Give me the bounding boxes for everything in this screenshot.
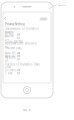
button[interactable]: App #1: [5, 52, 20, 54]
staticText: Transmission of Invitation Data: [5, 27, 39, 34]
button[interactable]: 30 mins: [5, 69, 20, 71]
staticText: Code OK/NG: [5, 40, 23, 44]
staticText: Privacy Setting: [5, 22, 25, 26]
staticText: B: ON/OFF: [5, 34, 14, 41]
button[interactable]: App #2: [5, 55, 20, 57]
staticText: Website #1: [5, 56, 16, 63]
staticText: 1 day: [5, 71, 12, 75]
staticText: Validity of Invitation Data: [5, 63, 39, 66]
button[interactable]: Back: [4, 17, 7, 20]
button[interactable]: 1 day: [5, 72, 20, 74]
staticText: Apps/Website Allowed to: [5, 42, 37, 49]
button[interactable]: Website #1: [5, 58, 20, 60]
staticText: App #2: [5, 54, 16, 58]
staticText: 30 mins: [5, 68, 16, 72]
staticText: FIG. 8: [23, 108, 31, 112]
button[interactable]: B: ON/OFF: [5, 37, 20, 39]
button[interactable]: Done: [40, 17, 47, 20]
staticText: A: ON/OFF: [5, 31, 14, 38]
staticText: Calling Device: [57, 5, 66, 6]
staticText: App #1: [5, 51, 16, 55]
staticText: Done: [41, 18, 45, 20]
staticText: Limit: [5, 65, 11, 69]
staticText: Transmit Data: [5, 46, 21, 50]
button[interactable]: Home: [23, 86, 31, 94]
button[interactable]: A: ON/OFF: [5, 33, 20, 36]
